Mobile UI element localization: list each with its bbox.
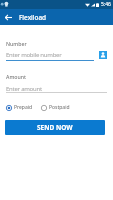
button[interactable]: Back [0, 9, 16, 25]
button[interactable]: SEND NOW [5, 120, 105, 135]
staticText: 5:46 [101, 1, 111, 8]
staticText: Enter amount [6, 85, 42, 93]
staticText: Flexiload [19, 13, 47, 22]
button[interactable]: Enter amount [6, 83, 107, 93]
staticText: Prepaid [14, 104, 33, 111]
button[interactable]: Postpaid [39, 102, 72, 113]
button[interactable]: Enter mobile number [6, 49, 94, 61]
staticText: Enter mobile number [6, 51, 62, 59]
staticText: SEND NOW [37, 123, 73, 132]
button[interactable]: Pick contact [99, 51, 107, 59]
staticText: Number [6, 40, 27, 47]
staticText: Amount [6, 73, 26, 80]
button[interactable]: Prepaid [4, 102, 35, 113]
staticText: Postpaid [49, 104, 70, 111]
